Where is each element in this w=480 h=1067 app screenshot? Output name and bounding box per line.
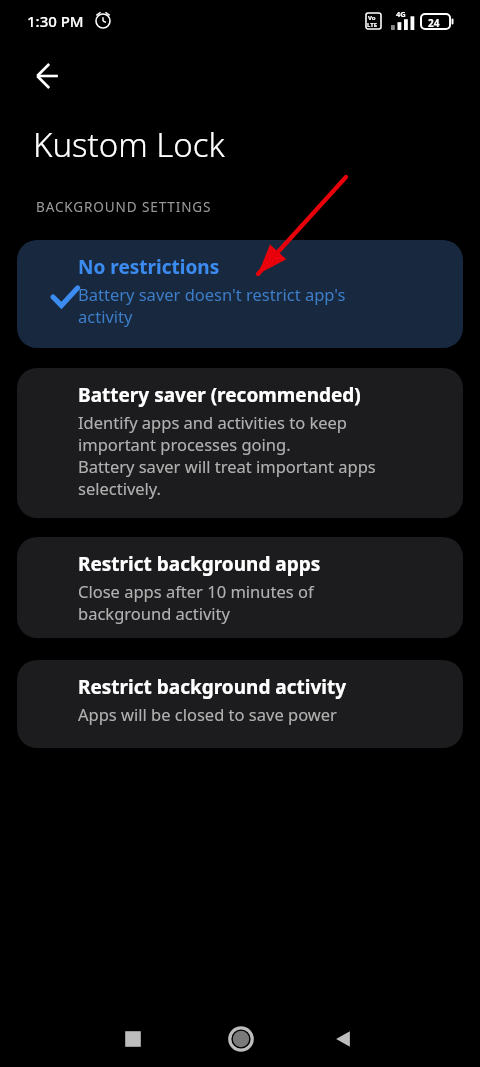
staticText: Restrict background apps	[78, 551, 321, 577]
button[interactable]: Restrict background apps	[17, 537, 463, 638]
button[interactable]: Recent apps	[118, 1024, 148, 1054]
staticText: Battery saver doesn't restrict app's	[78, 283, 346, 305]
staticText: selectively.	[78, 477, 162, 499]
staticText: background activity	[78, 602, 230, 624]
staticText: BACKGROUND SETTINGS	[36, 198, 212, 216]
button[interactable]: Back	[22, 53, 68, 99]
button[interactable]: Home	[224, 1022, 258, 1056]
button[interactable]: Back	[328, 1024, 358, 1054]
staticText: Battery saver (recommended)	[78, 382, 361, 408]
staticText: Restrict background activity	[78, 674, 347, 700]
staticText: Vo	[368, 14, 376, 22]
staticText: Close apps after 10 minutes of	[78, 580, 314, 602]
staticText: Battery saver will treat important apps	[78, 455, 376, 477]
staticText: Kustom Lock	[33, 122, 225, 167]
button[interactable]: Battery saver (recommended)	[17, 368, 463, 518]
staticText: activity	[78, 305, 133, 327]
staticText: 1:30 PM	[27, 11, 84, 31]
button[interactable]: Restrict background activity	[17, 660, 463, 748]
button[interactable]: No restrictions	[17, 240, 463, 348]
staticText: 24	[428, 16, 440, 30]
staticText: 4G	[396, 9, 406, 19]
staticText: LTE	[367, 21, 378, 29]
staticText: No restrictions	[78, 254, 220, 280]
staticText: Identify apps and activities to keep	[78, 411, 348, 433]
staticText: important processes going.	[78, 433, 291, 455]
staticText: Apps will be closed to save power	[78, 703, 337, 725]
